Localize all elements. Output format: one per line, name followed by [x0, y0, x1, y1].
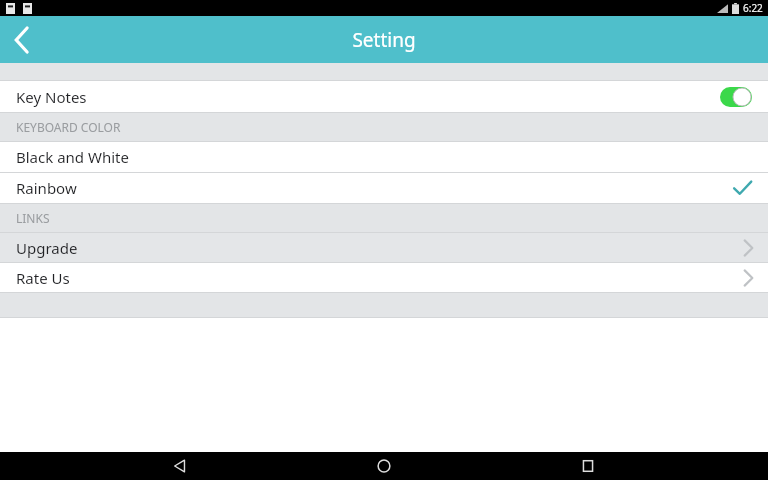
button[interactable]: Key Notes: [0, 81, 768, 112]
button[interactable]: Back: [156, 452, 204, 480]
staticText: Setting: [352, 27, 416, 53]
button[interactable]: Rainbow: [0, 173, 768, 203]
staticText: Upgrade: [16, 238, 78, 258]
button[interactable]: Back: [0, 18, 44, 62]
button[interactable]: Upgrade: [0, 233, 768, 262]
staticText: LINKS: [16, 210, 50, 226]
staticText: Key Notes: [16, 87, 87, 107]
button[interactable]: Black and White: [0, 142, 768, 172]
staticText: Rainbow: [16, 178, 77, 198]
button[interactable]: Rate Us: [0, 263, 768, 292]
button[interactable]: Home: [360, 452, 408, 480]
staticText: Rate Us: [16, 268, 70, 288]
staticText: 6:22: [743, 1, 763, 15]
staticText: KEYBOARD COLOR: [16, 119, 121, 135]
button[interactable]: Key Notes toggle: [720, 87, 752, 107]
staticText: Black and White: [16, 147, 129, 167]
button[interactable]: Recents: [564, 452, 612, 480]
